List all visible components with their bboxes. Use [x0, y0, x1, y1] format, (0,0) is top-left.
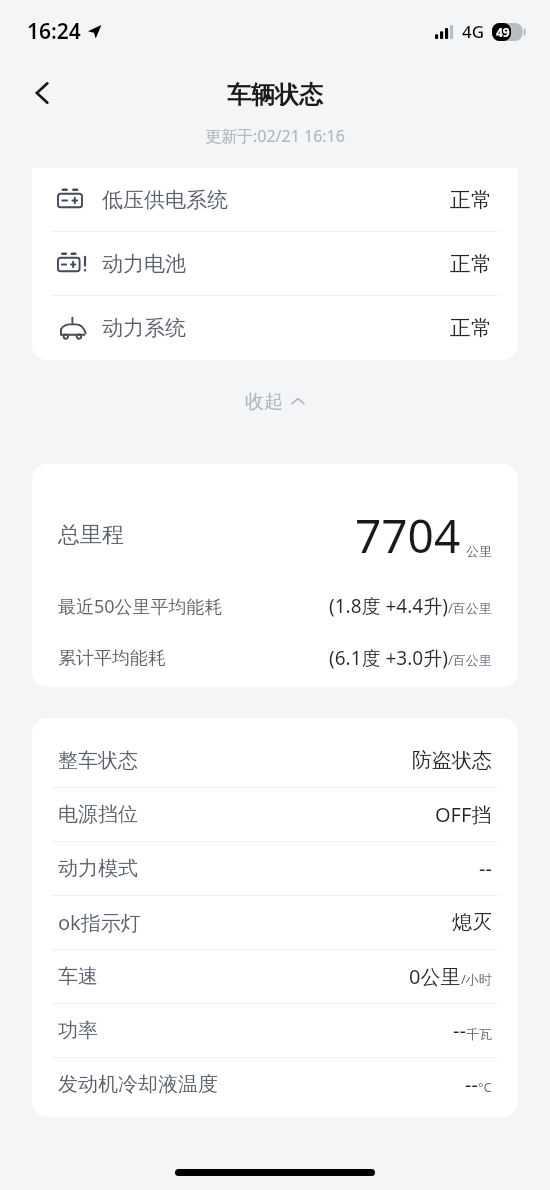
staticText: 车速 [58, 964, 98, 989]
staticText: 累计平均能耗 [58, 647, 166, 670]
staticText: /百公里 [448, 651, 492, 669]
button[interactable]: 动力模式 [58, 842, 492, 895]
staticText: -- [479, 855, 492, 882]
button[interactable]: ok指示灯 [58, 896, 492, 949]
button[interactable]: 总里程 [58, 504, 492, 566]
staticText: -- [453, 1017, 466, 1044]
staticText: 16:24 [27, 17, 81, 46]
staticText: °C [478, 1078, 492, 1096]
button[interactable]: 累计平均能耗 [58, 634, 492, 682]
staticText: 正常 [450, 251, 492, 277]
staticText: 动力电池 [102, 251, 186, 277]
staticText: 4G [462, 20, 485, 43]
button[interactable]: 低压供电系统 [58, 168, 492, 231]
staticText: (1.8度 +4.4升) [329, 593, 448, 619]
staticText: 49 [496, 24, 510, 40]
staticText: 总里程 [58, 521, 124, 549]
button[interactable]: 整车状态 [58, 734, 492, 787]
staticText: 千瓦 [466, 1026, 492, 1042]
staticText: 防盗状态 [412, 748, 492, 773]
button[interactable]: 动力电池 [58, 232, 492, 295]
staticText: 更新于:02/21 16:16 [205, 125, 345, 147]
staticText: (6.1度 +3.0升) [329, 645, 448, 671]
staticText: 整车状态 [58, 748, 138, 773]
staticText: 熄灭 [452, 910, 492, 935]
staticText: -- [465, 1071, 478, 1098]
staticText: 最近50公里平均能耗 [58, 594, 223, 619]
staticText: 正常 [450, 187, 492, 213]
staticText: 动力模式 [58, 856, 138, 881]
staticText: 7704 [355, 504, 461, 566]
staticText: 功率 [58, 1018, 98, 1043]
staticText: OFF挡 [435, 801, 492, 828]
button[interactable]: 收起 [0, 378, 550, 426]
button[interactable]: 电源挡位 [58, 788, 492, 841]
button[interactable]: 功率 [58, 1004, 492, 1057]
staticText: ok指示灯 [58, 909, 141, 936]
staticText: 收起 [245, 390, 283, 414]
staticText: 动力系统 [102, 315, 186, 341]
button[interactable]: 发动机冷却液温度 [58, 1058, 492, 1111]
staticText: 公里 [466, 543, 492, 559]
staticText: 电源挡位 [58, 802, 138, 827]
staticText: 车辆状态 [227, 80, 323, 110]
button[interactable]: Back [16, 66, 70, 120]
staticText: 正常 [450, 315, 492, 341]
staticText: 发动机冷却液温度 [58, 1072, 218, 1097]
staticText: /百公里 [448, 599, 492, 617]
staticText: /小时 [461, 970, 492, 988]
button[interactable]: 动力系统 [58, 296, 492, 359]
staticText: 低压供电系统 [102, 187, 228, 213]
button[interactable]: 车速 [58, 950, 492, 1003]
staticText: 0公里 [409, 963, 461, 990]
button[interactable]: 最近50公里平均能耗 [58, 582, 492, 630]
